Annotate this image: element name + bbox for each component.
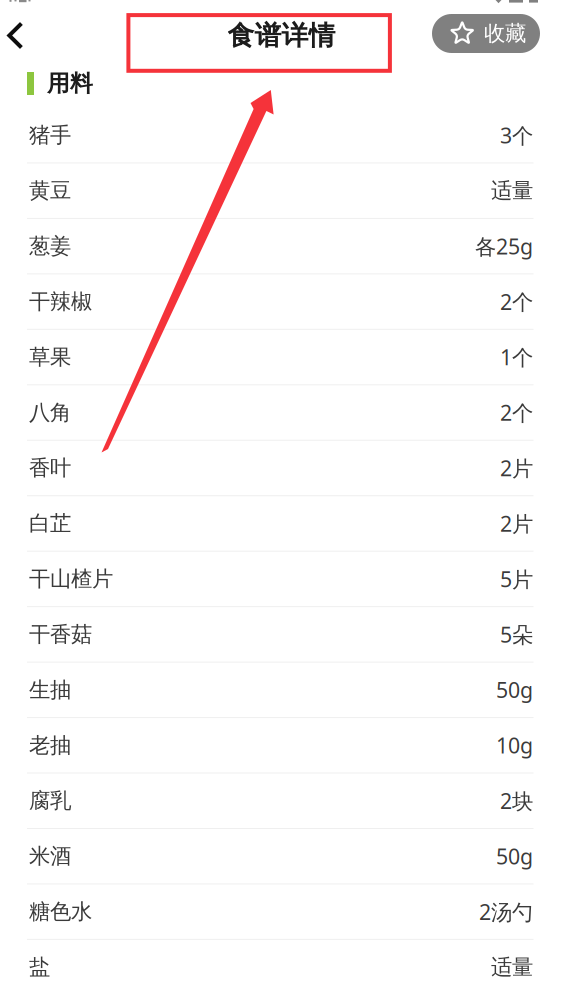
staticText: 食谱详情 [227, 19, 335, 52]
staticText: 2个 [500, 398, 533, 427]
staticText: 白芷 [29, 510, 71, 536]
staticText: 干辣椒 [29, 288, 92, 315]
staticText: 5片 [500, 565, 533, 593]
staticText: 香叶 [29, 455, 71, 481]
staticText: 50g [496, 842, 533, 870]
staticText: 盐 [29, 954, 50, 980]
staticText: 干香菇 [29, 621, 92, 647]
staticText: 50g [496, 676, 533, 704]
staticText: 用料 [47, 70, 93, 97]
staticText: 米酒 [29, 843, 71, 869]
staticText: 生抽 [29, 677, 71, 703]
staticText: 猪手 [29, 122, 71, 148]
staticText: 3个 [500, 121, 533, 149]
staticText: 收藏 [484, 20, 526, 47]
staticText: 八角 [29, 399, 71, 426]
staticText: 1个 [500, 343, 533, 371]
staticText: 草果 [29, 344, 71, 370]
staticText: 葱姜 [29, 233, 71, 259]
staticText: 老抽 [29, 732, 71, 758]
staticText: 腐乳 [29, 788, 71, 814]
staticText: 10g [496, 731, 533, 759]
staticText: 2块 [500, 787, 533, 815]
button[interactable]: 收藏 [432, 14, 540, 57]
staticText: 各25g [475, 232, 533, 260]
staticText: 2汤勺 [479, 897, 533, 926]
staticText: 5朵 [500, 620, 533, 648]
staticText: 2个 [500, 287, 533, 316]
staticText: 适量 [491, 954, 533, 980]
staticText: 2片 [500, 509, 533, 538]
staticText: 黄豆 [29, 178, 71, 204]
staticText: 糖色水 [29, 899, 92, 925]
staticText: 适量 [491, 178, 533, 204]
staticText: 2片 [500, 454, 533, 482]
button[interactable]: 返回 [0, 8, 38, 63]
staticText: 干山楂片 [29, 566, 113, 592]
